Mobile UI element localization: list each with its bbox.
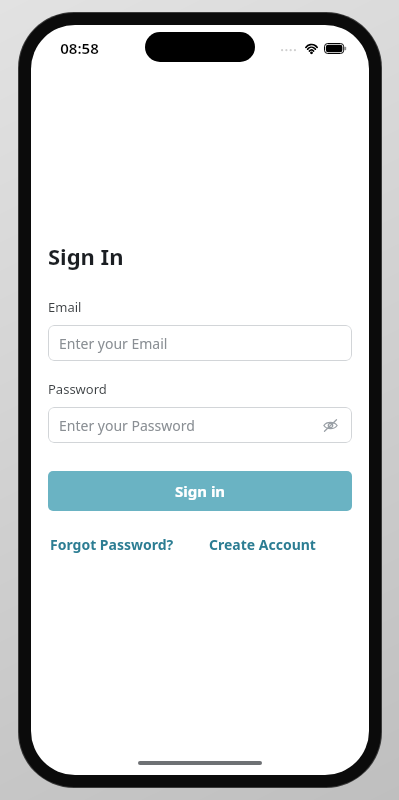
staticText: Email (48, 298, 82, 316)
staticText: Enter your Email (59, 334, 168, 353)
button[interactable]: Sign in (48, 471, 352, 511)
button[interactable]: Enter your Password (48, 407, 352, 443)
staticText: Enter your Password (59, 416, 195, 435)
staticText: Password (48, 380, 107, 398)
staticText: Forgot Password? (50, 535, 174, 554)
button[interactable]: Forgot Password? (48, 533, 176, 556)
staticText: Sign in (175, 481, 226, 501)
button[interactable]: Create Account (207, 533, 318, 556)
staticText: Create Account (209, 535, 316, 554)
staticText: 08:58 (60, 38, 99, 58)
staticText: Sign In (48, 241, 124, 271)
button[interactable]: Enter your Email (48, 325, 352, 361)
button[interactable]: Show password (319, 414, 341, 436)
